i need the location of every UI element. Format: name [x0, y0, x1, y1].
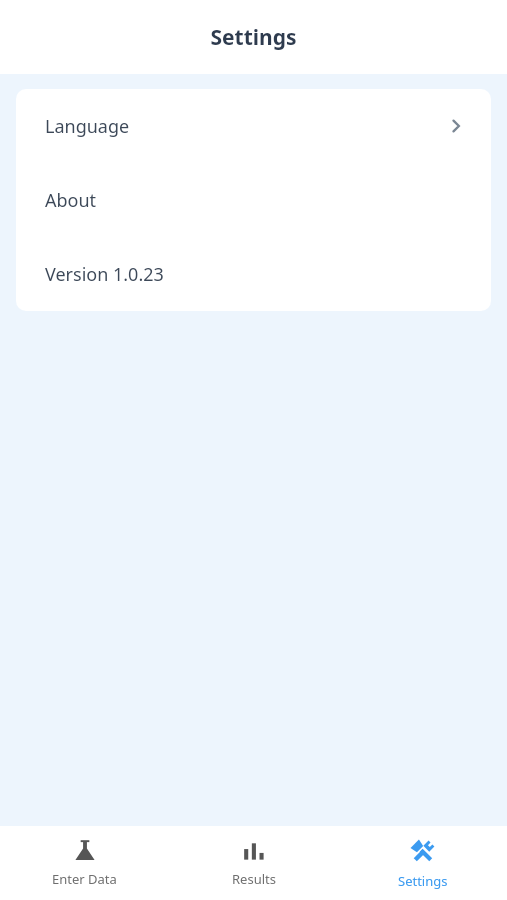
staticText: Version 1.0.23	[45, 262, 164, 287]
other: Results	[242, 839, 266, 863]
other: Enter Data	[73, 839, 97, 863]
button[interactable]: Language	[16, 89, 491, 163]
staticText: Settings	[210, 23, 297, 52]
button[interactable]: Results	[169, 826, 338, 900]
staticText: Language	[45, 114, 130, 139]
staticText: Results	[232, 870, 276, 888]
button[interactable]: About	[16, 163, 491, 237]
other: Settings	[410, 839, 436, 865]
staticText: Settings	[398, 872, 448, 890]
button[interactable]: Enter Data	[0, 826, 169, 900]
button[interactable]: Settings	[338, 826, 507, 900]
staticText: About	[45, 188, 97, 213]
button[interactable]: Version 1.0.23	[16, 237, 491, 311]
staticText: Enter Data	[52, 870, 117, 888]
